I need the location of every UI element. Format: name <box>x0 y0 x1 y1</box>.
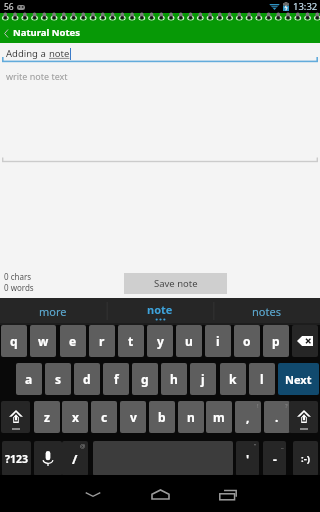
staticText: 56 <box>4 1 14 13</box>
staticText: d <box>83 371 91 387</box>
staticText: . <box>275 409 279 425</box>
button[interactable]: a <box>16 363 42 395</box>
staticText: t <box>128 333 134 349</box>
button[interactable]: Home <box>128 475 192 512</box>
button[interactable]: Voice input <box>34 441 62 476</box>
button[interactable]: w <box>30 325 56 357</box>
staticText: c <box>101 409 108 425</box>
button[interactable]: Recents <box>196 475 260 512</box>
staticText: q <box>10 333 18 349</box>
button[interactable]: o <box>234 325 260 357</box>
button[interactable]: s <box>45 363 71 395</box>
staticText: , <box>246 409 250 425</box>
staticText: j <box>201 371 205 387</box>
button[interactable]: , <box>235 401 261 433</box>
button[interactable]: - <box>263 441 286 476</box>
staticText: write note text <box>6 70 68 82</box>
button[interactable]: n <box>178 401 204 433</box>
staticText: x <box>72 409 79 425</box>
staticText: l <box>260 371 264 387</box>
button[interactable]: Back <box>1 23 11 43</box>
button[interactable]: c <box>91 401 117 433</box>
button[interactable]: note <box>106 298 213 325</box>
button[interactable]: Backspace <box>292 325 318 357</box>
button[interactable]: Space <box>93 441 233 476</box>
button[interactable]: notes <box>213 298 320 325</box>
staticText: :-) <box>301 452 310 465</box>
staticText: more <box>39 304 67 319</box>
staticText: ! <box>257 402 259 410</box>
button[interactable]: i <box>205 325 231 357</box>
staticText: 0 chars <box>4 271 32 282</box>
staticText: / <box>72 450 78 468</box>
staticText: i <box>216 333 220 349</box>
staticText: e <box>69 333 77 349</box>
staticText: p <box>272 333 280 349</box>
staticText: Next <box>285 372 312 387</box>
staticText: n <box>187 409 195 425</box>
staticText: f <box>114 371 119 387</box>
button[interactable]: Shift <box>1 401 30 433</box>
staticText: 13:32 <box>293 0 318 13</box>
button[interactable]: l <box>249 363 275 395</box>
button[interactable]: z <box>34 401 60 433</box>
staticText: a <box>25 371 33 387</box>
staticText: Natural Notes <box>13 26 80 39</box>
button[interactable]: f <box>103 363 129 395</box>
button[interactable]: :-) <box>293 441 318 476</box>
staticText: note <box>49 47 70 60</box>
button[interactable]: . <box>264 401 290 433</box>
staticText: g <box>141 371 149 387</box>
button[interactable]: Back <box>60 475 125 512</box>
button[interactable]: h <box>161 363 187 395</box>
button[interactable]: Shift <box>289 401 318 433</box>
staticText: s <box>55 371 62 387</box>
staticText: b <box>158 409 166 425</box>
button[interactable]: / <box>62 441 88 476</box>
staticText: ?123 <box>5 452 29 466</box>
button[interactable]: x <box>62 401 88 433</box>
button[interactable]: ' <box>236 441 259 476</box>
staticText: v <box>130 409 137 425</box>
staticText: h <box>170 371 178 387</box>
staticText: ? <box>285 402 288 410</box>
button[interactable]: y <box>147 325 173 357</box>
button[interactable]: t <box>118 325 144 357</box>
button[interactable]: u <box>176 325 202 357</box>
staticText: w <box>38 333 49 349</box>
button[interactable]: more <box>0 298 106 325</box>
button[interactable]: d <box>74 363 100 395</box>
button[interactable]: v <box>120 401 146 433</box>
staticText: r <box>99 333 105 349</box>
button[interactable]: r <box>89 325 115 357</box>
staticText: 0 words <box>4 282 34 293</box>
staticText: z <box>44 409 50 425</box>
button[interactable]: g <box>132 363 158 395</box>
staticText: notes <box>252 304 281 319</box>
staticText: m <box>213 409 225 425</box>
button[interactable]: ?123 <box>2 441 31 476</box>
staticText: u <box>185 333 193 349</box>
button[interactable]: Next <box>278 363 319 395</box>
staticText: k <box>229 371 237 387</box>
staticText: Adding a <box>6 47 49 60</box>
button[interactable]: m <box>206 401 232 433</box>
staticText: note <box>147 302 173 317</box>
button[interactable]: j <box>190 363 216 395</box>
button[interactable]: b <box>149 401 175 433</box>
staticText: @ <box>80 442 86 450</box>
staticText: - <box>273 451 277 467</box>
button[interactable]: p <box>263 325 289 357</box>
staticText: ' <box>246 451 250 467</box>
button[interactable]: e <box>60 325 86 357</box>
staticText: " <box>254 442 257 450</box>
staticText: y <box>157 333 164 349</box>
staticText: Save note <box>154 277 198 290</box>
staticText: o <box>243 333 251 349</box>
button[interactable]: Save note <box>124 273 227 294</box>
staticText: _ <box>281 442 284 450</box>
button[interactable]: k <box>220 363 246 395</box>
button[interactable]: q <box>1 325 27 357</box>
